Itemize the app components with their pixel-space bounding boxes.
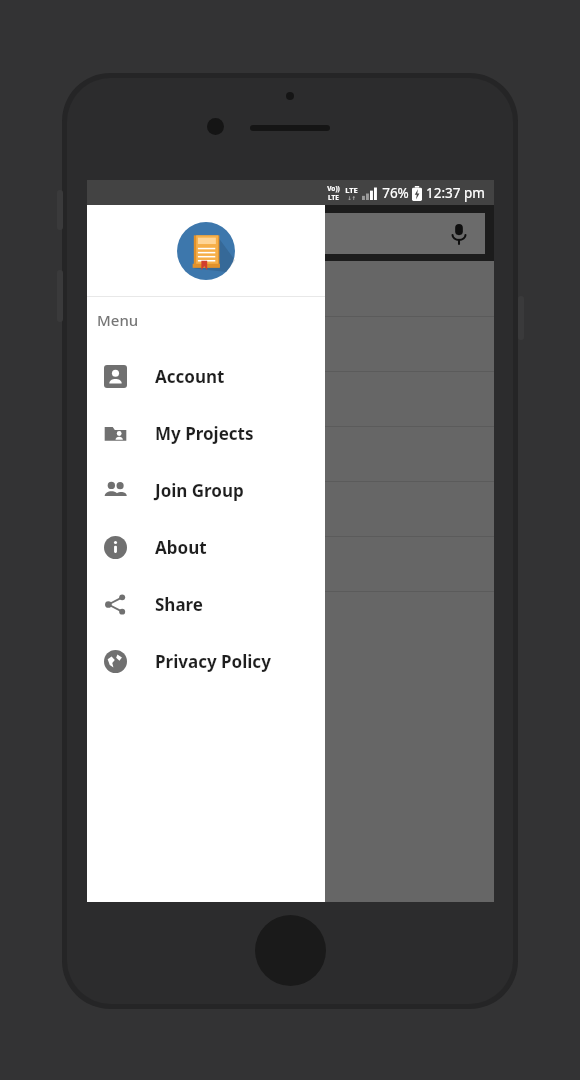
staticText: Menu	[97, 310, 139, 330]
staticText: Join Group	[155, 479, 244, 502]
staticText: 76%	[382, 184, 409, 202]
staticText: Share	[155, 593, 204, 616]
button[interactable]	[87, 427, 494, 482]
staticText: LTE	[328, 193, 339, 202]
button[interactable]: Privacy Policy	[87, 633, 325, 690]
button[interactable]: Join Group	[87, 462, 325, 519]
button[interactable]	[87, 372, 494, 427]
staticText: LTE	[345, 185, 358, 195]
staticText: My Projects	[155, 422, 254, 445]
button[interactable]	[87, 317, 494, 372]
staticText: Vo))	[327, 184, 340, 193]
staticText: 12:37 pm	[426, 184, 485, 202]
button[interactable]	[87, 262, 494, 317]
button[interactable]: About	[87, 519, 325, 576]
staticText: Privacy Policy	[155, 650, 271, 673]
button[interactable]: Voice search	[447, 222, 471, 246]
staticText: About	[155, 536, 207, 559]
button[interactable]	[87, 482, 494, 537]
button[interactable]	[87, 537, 494, 592]
button[interactable]: My Projects	[87, 405, 325, 462]
button[interactable]: Share	[87, 576, 325, 633]
staticText: Account	[155, 365, 225, 388]
button[interactable]: Account	[87, 348, 325, 405]
staticText: ↓↑	[347, 195, 356, 201]
